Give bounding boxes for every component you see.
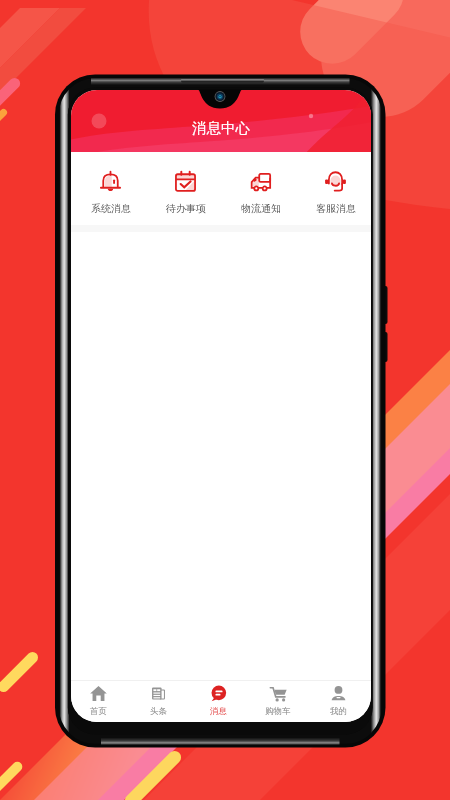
staticText: 购物车 xyxy=(265,706,291,717)
button[interactable]: 首页 xyxy=(71,681,128,722)
staticText: 客服消息 xyxy=(316,202,356,215)
button[interactable]: 购物车 xyxy=(248,681,308,722)
button[interactable]: 待办事项 xyxy=(148,152,223,225)
other: 我的 xyxy=(330,685,347,702)
staticText: 我的 xyxy=(330,706,347,717)
other: 购物车 xyxy=(270,685,287,702)
staticText: 系统消息 xyxy=(91,202,131,215)
button[interactable]: 消息 xyxy=(188,681,248,722)
button[interactable]: 我的 xyxy=(308,681,368,722)
staticText: 物流通知 xyxy=(241,202,281,215)
other: 客服消息 xyxy=(325,171,346,192)
staticText: 待办事项 xyxy=(166,202,206,215)
button[interactable]: 物流通知 xyxy=(223,152,298,225)
staticText: 首页 xyxy=(90,706,107,717)
other: 头条 xyxy=(150,685,167,702)
staticText: 消息 xyxy=(210,706,227,717)
staticText: 头条 xyxy=(150,706,167,717)
button[interactable]: 客服消息 xyxy=(298,152,371,225)
other: 待办事项 xyxy=(175,171,196,192)
other: 物流通知 xyxy=(250,171,271,192)
button[interactable]: 系统消息 xyxy=(73,152,148,225)
staticText: 消息中心 xyxy=(192,119,250,137)
other: 系统消息 xyxy=(100,171,121,192)
button[interactable]: 头条 xyxy=(128,681,188,722)
other: 消息 xyxy=(210,685,227,702)
other: 首页 xyxy=(90,685,107,702)
